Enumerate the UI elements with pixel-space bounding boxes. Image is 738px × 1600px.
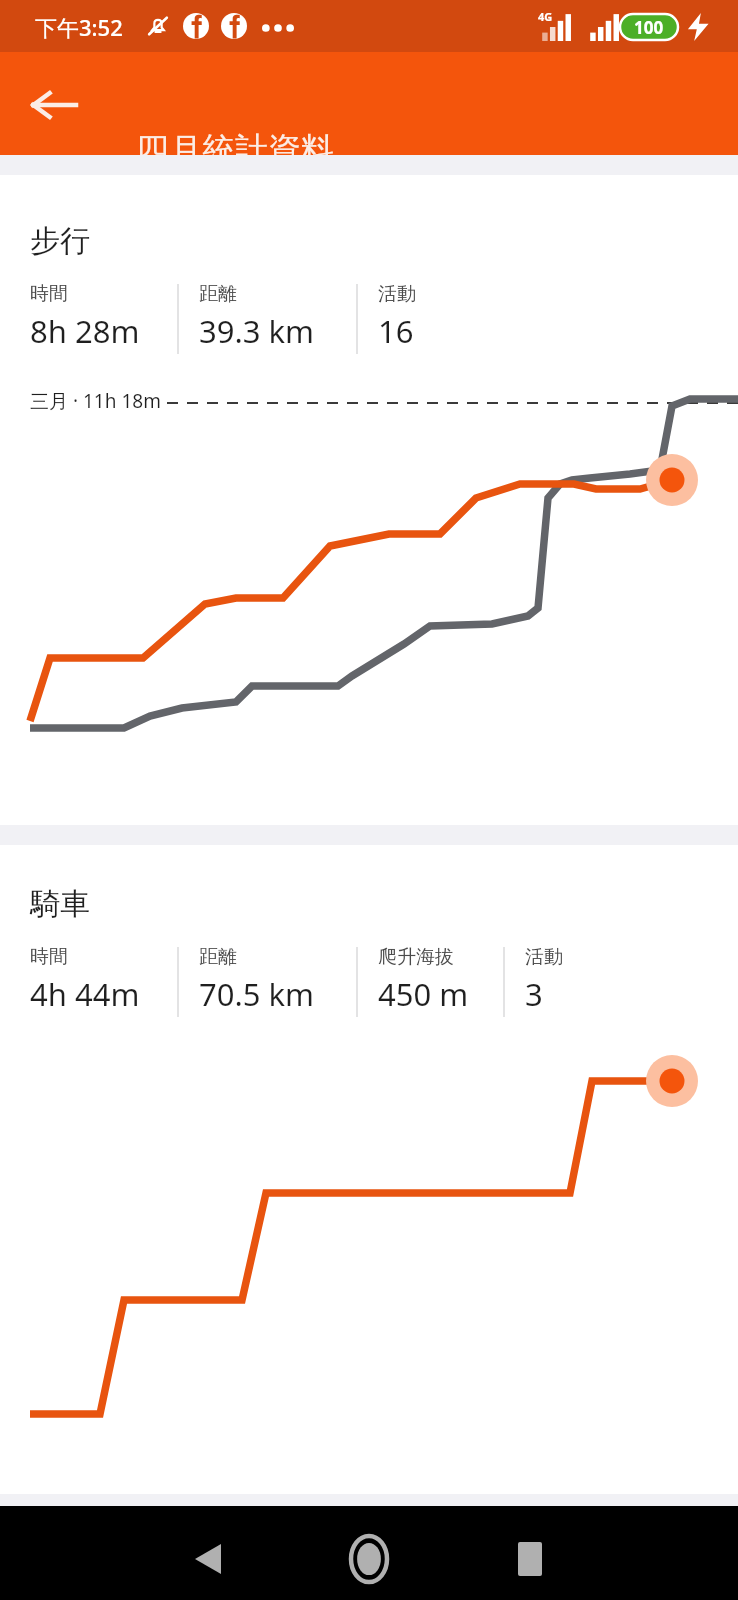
- staticText: 8h 28m: [30, 310, 140, 352]
- staticText: 活動: [525, 945, 563, 969]
- staticText: 70.5 km: [199, 973, 315, 1015]
- staticText: 爬升海拔: [378, 945, 454, 969]
- staticText: 450 m: [378, 973, 469, 1015]
- staticText: 四月統計資料: [136, 129, 334, 171]
- button[interactable]: Recent apps: [490, 1529, 570, 1589]
- staticText: 4h 44m: [30, 973, 140, 1015]
- staticText: 騎車: [30, 885, 90, 923]
- button[interactable]: Back: [168, 1529, 248, 1589]
- staticText: 100: [634, 16, 664, 39]
- staticText: 39.3 km: [199, 310, 315, 352]
- staticText: 時間: [30, 282, 68, 306]
- staticText: 三月 · 11h 18m: [30, 388, 161, 414]
- staticText: 4G: [538, 9, 553, 24]
- staticText: 活動: [378, 282, 416, 306]
- staticText: 下午3:52: [35, 12, 123, 42]
- button[interactable]: 三月 · 11h 18m: [0, 386, 738, 786]
- staticText: 步行: [30, 222, 90, 260]
- button[interactable]: [0, 1041, 738, 1471]
- staticText: 時間: [30, 945, 68, 969]
- staticText: 距離: [199, 945, 237, 969]
- staticText: 3: [525, 973, 543, 1015]
- staticText: 距離: [199, 282, 237, 306]
- button[interactable]: Back: [10, 78, 98, 130]
- staticText: 16: [378, 310, 414, 352]
- button[interactable]: Home: [329, 1529, 409, 1589]
